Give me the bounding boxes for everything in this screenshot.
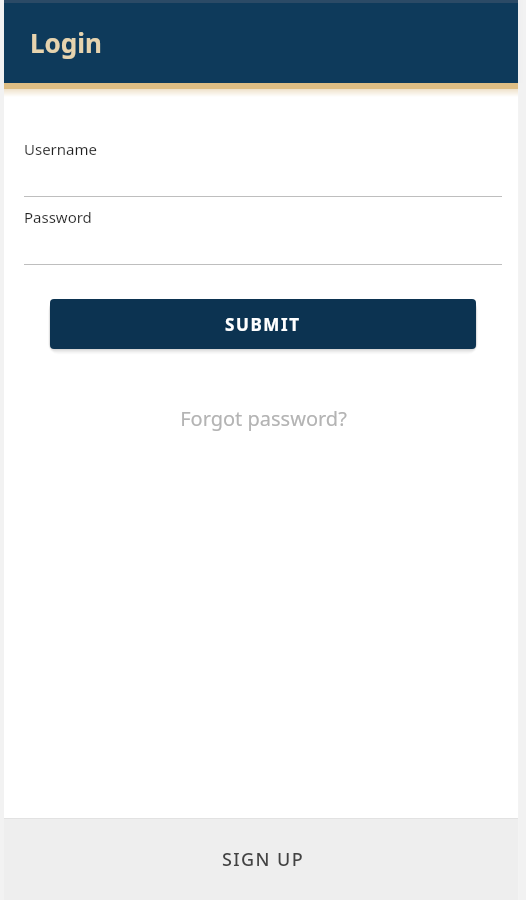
button[interactable]: Password [24,197,502,265]
button[interactable]: SIGN UP [0,818,526,900]
staticText: Password [24,207,92,227]
button[interactable]: Username [24,129,502,197]
staticText: Forgot password? [180,405,347,432]
staticText: Login [30,25,102,60]
staticText: SUBMIT [225,313,301,336]
button[interactable]: Forgot password? [0,405,526,432]
staticText: SIGN UP [222,847,305,872]
staticText: Username [24,139,97,159]
button[interactable]: SUBMIT [50,299,476,349]
